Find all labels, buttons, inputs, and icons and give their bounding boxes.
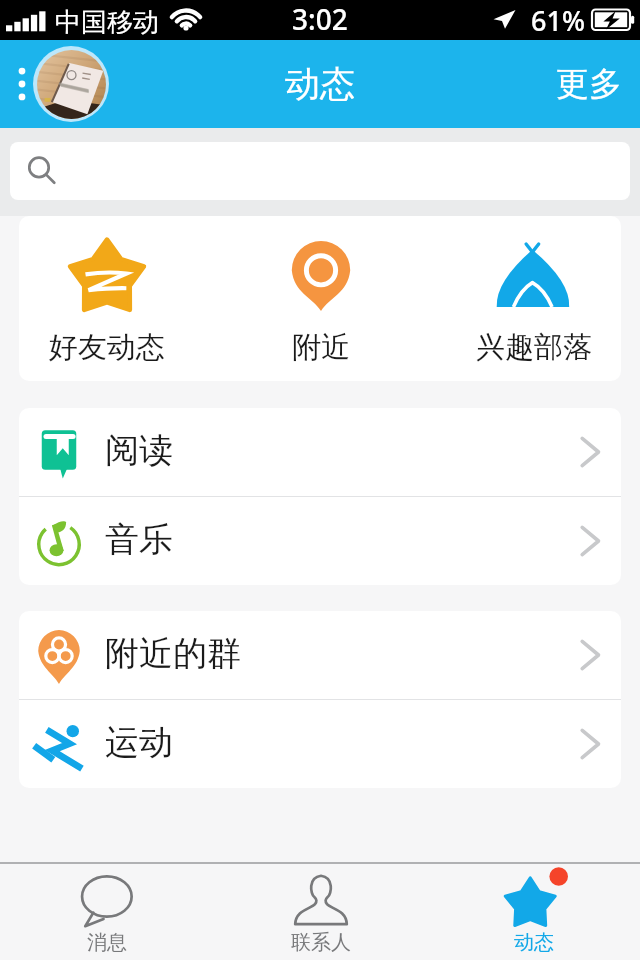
button[interactable]: 好友动态	[0, 216, 214, 381]
button[interactable]: 动态	[427, 864, 640, 960]
button[interactable]: Profile avatar	[33, 46, 109, 122]
staticText: 3:02	[292, 0, 348, 38]
staticText: 运动	[105, 721, 173, 764]
staticText: 动态	[285, 62, 355, 106]
button[interactable]: 阅读	[19, 408, 621, 496]
staticText: 61%	[531, 2, 585, 39]
staticText: 附近的群	[105, 632, 241, 675]
button[interactable]: 联系人	[214, 864, 427, 960]
button[interactable]: 附近的群	[19, 611, 621, 699]
button[interactable]: 附近	[214, 216, 427, 381]
button[interactable]: 更多	[538, 40, 640, 128]
button[interactable]: Search	[10, 142, 630, 200]
staticText: 阅读	[105, 429, 173, 472]
button[interactable]: 兴趣部落	[427, 216, 640, 381]
staticText: 好友动态	[49, 329, 165, 366]
staticText: 动态	[514, 930, 554, 955]
button[interactable]: More options	[0, 40, 44, 128]
button[interactable]: 音乐	[19, 497, 621, 585]
button[interactable]: 消息	[0, 864, 214, 960]
staticText: 更多	[556, 63, 622, 105]
button[interactable]: 运动	[19, 700, 621, 788]
staticText: 附近	[292, 329, 350, 366]
staticText: 消息	[87, 930, 127, 955]
staticText: 兴趣部落	[476, 329, 592, 366]
staticText: 音乐	[105, 518, 173, 561]
staticText: 联系人	[291, 930, 351, 955]
staticText: 中国移动	[55, 6, 159, 39]
